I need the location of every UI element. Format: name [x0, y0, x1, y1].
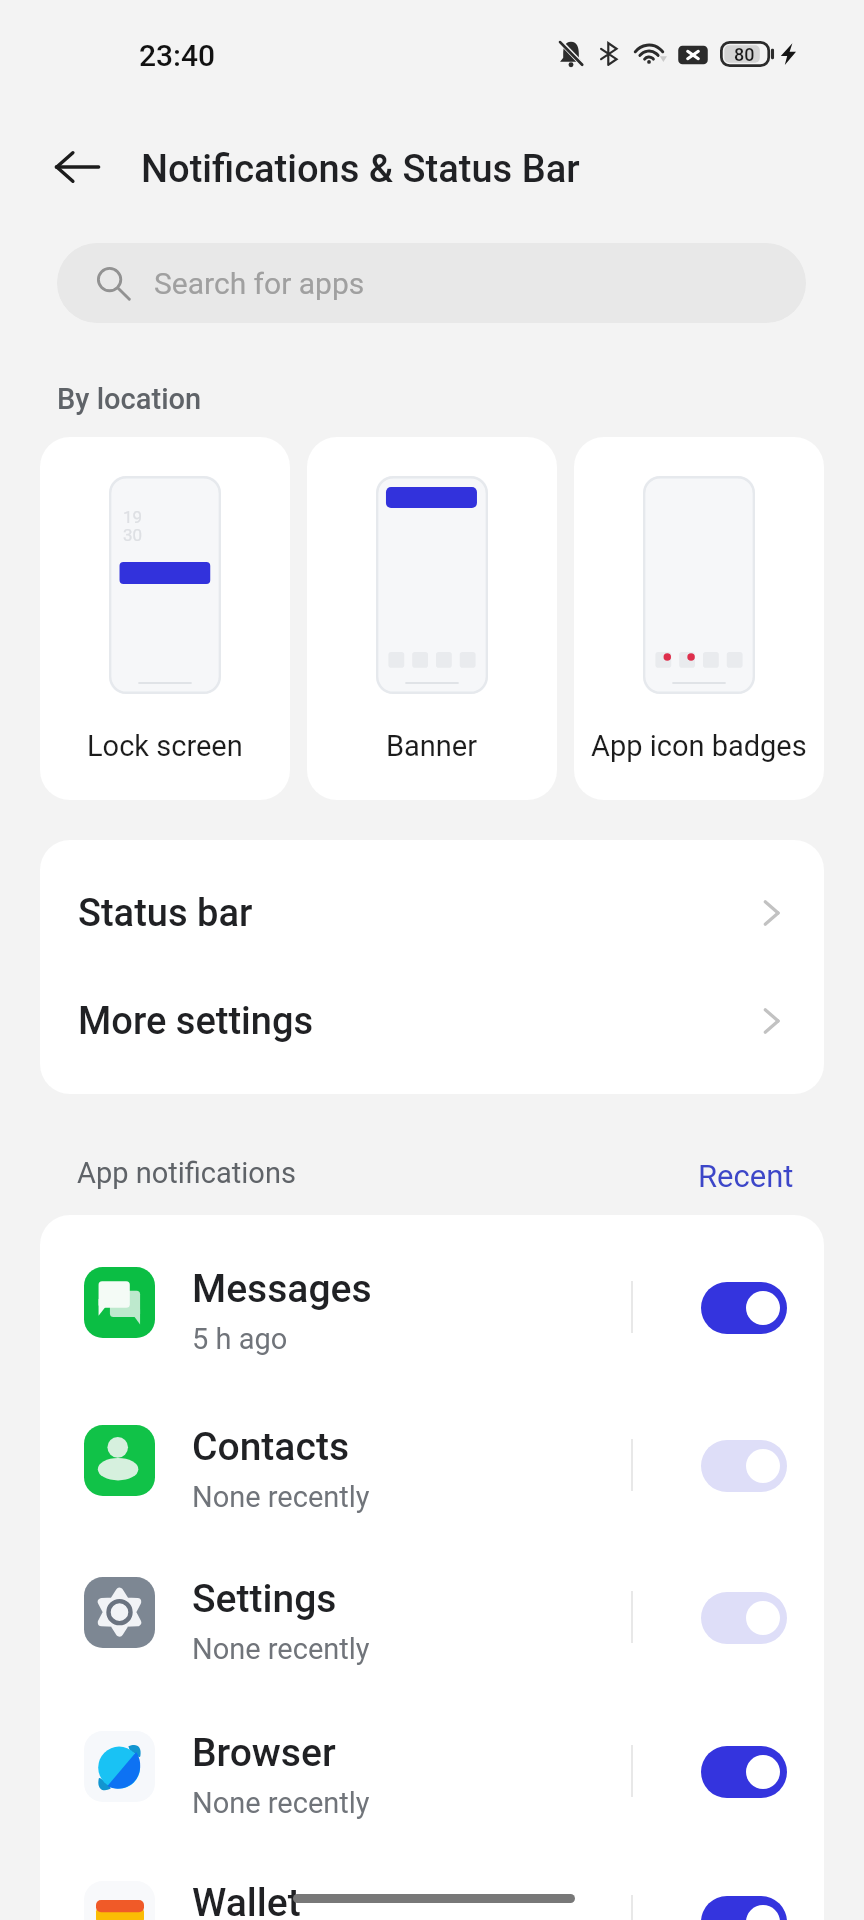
button[interactable]: Search for apps — [57, 243, 806, 323]
staticText: Search for apps — [154, 266, 365, 301]
button[interactable]: Status bar — [40, 859, 824, 967]
button[interactable]: Back — [40, 130, 114, 204]
button[interactable]: App icon badges — [574, 437, 824, 800]
staticText: 30 — [123, 525, 143, 545]
staticText: App icon badges — [591, 729, 807, 763]
button[interactable]: More settings — [40, 967, 824, 1075]
staticText: Wallet — [192, 1880, 301, 1920]
staticText: 23:40 — [139, 38, 216, 73]
staticText: Messages — [192, 1266, 372, 1312]
button[interactable]: Messages — [40, 1222, 824, 1374]
button[interactable]: Browser — [40, 1686, 824, 1838]
staticText: Banner — [386, 729, 478, 763]
button[interactable]: Contacts — [40, 1380, 824, 1532]
staticText: None recently — [192, 1786, 370, 1820]
staticText: None recently — [192, 1480, 370, 1514]
staticText: Status bar — [78, 891, 253, 936]
staticText: Recent — [698, 1158, 794, 1194]
staticText: Notifications & Status Bar — [141, 147, 580, 192]
button[interactable]: Toggle Wallet notifications — [701, 1896, 787, 1920]
button[interactable]: Wallet — [40, 1836, 824, 1920]
staticText: Contacts — [192, 1424, 350, 1470]
staticText: By location — [57, 382, 202, 416]
staticText: None recently — [192, 1632, 370, 1666]
staticText: More settings — [78, 999, 314, 1044]
button[interactable]: Toggle Settings notifications — [701, 1592, 787, 1644]
staticText: Settings — [192, 1576, 337, 1622]
button[interactable]: Toggle Browser notifications — [701, 1746, 787, 1798]
staticText: App notifications — [77, 1156, 296, 1190]
staticText: 5 h ago — [192, 1322, 288, 1356]
button[interactable]: Settings — [40, 1532, 824, 1684]
button[interactable]: Recent — [686, 1148, 806, 1204]
staticText: Browser — [192, 1730, 336, 1776]
button[interactable]: Toggle Contacts notifications — [701, 1440, 787, 1492]
staticText: 80 — [734, 44, 755, 65]
button[interactable]: Toggle Messages notifications — [701, 1282, 787, 1334]
button[interactable]: 19 — [40, 437, 290, 800]
staticText: Lock screen — [87, 729, 243, 763]
staticText: 19 — [123, 507, 143, 527]
button[interactable]: Banner — [307, 437, 557, 800]
